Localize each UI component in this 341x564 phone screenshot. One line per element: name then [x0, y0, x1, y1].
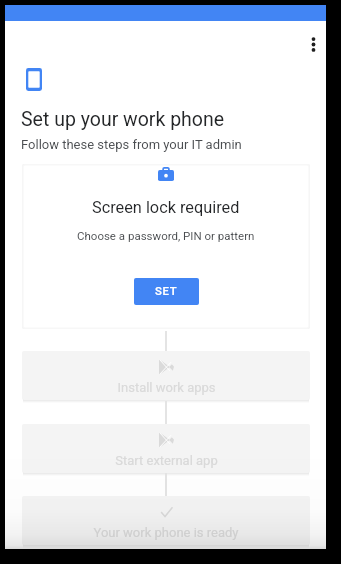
button[interactable]: Your work phone is ready	[22, 496, 310, 545]
staticText: Screen lock required	[92, 198, 240, 217]
staticText: Install work apps	[117, 380, 216, 395]
button[interactable]: SET	[134, 278, 199, 305]
button[interactable]: More options	[301, 32, 325, 56]
staticText: Set up your work phone	[21, 108, 225, 131]
staticText: Choose a password, PIN or pattern	[77, 229, 255, 242]
staticText: Your work phone is ready	[93, 525, 239, 540]
staticText: Start external app	[115, 453, 218, 468]
staticText: Follow these steps from your IT admin	[21, 137, 242, 152]
button[interactable]: Install work apps	[22, 351, 310, 400]
button[interactable]: Start external app	[22, 424, 310, 473]
button[interactable]: Screen lock required	[22, 164, 310, 329]
staticText: SET	[155, 285, 178, 298]
